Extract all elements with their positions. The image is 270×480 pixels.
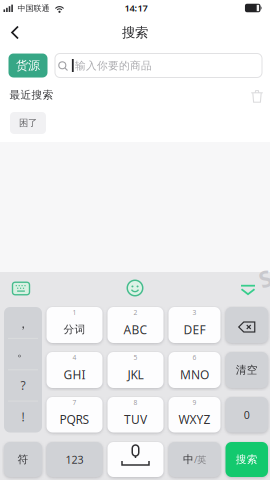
staticText: ， xyxy=(16,315,29,332)
button[interactable]: 5 xyxy=(107,352,163,388)
button[interactable]: ， xyxy=(4,308,42,339)
staticText: 输入你要的商品 xyxy=(75,59,152,72)
staticText: 2 xyxy=(133,308,137,317)
button[interactable]: Search field xyxy=(55,53,262,77)
staticText: WXYZ xyxy=(178,411,210,427)
button[interactable]: Clear recent searches xyxy=(249,88,265,104)
staticText: MNO xyxy=(180,366,209,382)
button[interactable]: Keyboard settings xyxy=(12,282,29,295)
button[interactable]: 符 xyxy=(4,442,42,477)
button[interactable]: Back xyxy=(0,17,30,47)
staticText: TUV xyxy=(124,411,147,427)
button[interactable]: 货源 xyxy=(8,53,47,77)
staticText: 。 xyxy=(17,345,29,359)
button[interactable]: 8 xyxy=(107,397,163,432)
button[interactable]: Delete xyxy=(225,307,268,343)
staticText: JKL xyxy=(127,366,143,382)
staticText: 困了 xyxy=(19,117,37,129)
staticText: 搜索 xyxy=(236,453,258,466)
staticText: 0 xyxy=(244,408,250,422)
staticText: /英 xyxy=(194,453,206,466)
button[interactable]: Emoji xyxy=(127,280,143,296)
staticText: 清空 xyxy=(236,363,258,376)
button[interactable]: 。 xyxy=(4,337,42,368)
button[interactable]: 2 xyxy=(107,307,163,343)
staticText: 分词 xyxy=(63,323,85,336)
staticText: 1 xyxy=(72,308,76,317)
staticText: 14:17 xyxy=(124,2,147,14)
staticText: 3 xyxy=(192,308,196,317)
button[interactable]: 123 xyxy=(46,442,102,477)
staticText: ! xyxy=(21,409,24,425)
staticText: 5 xyxy=(133,353,137,362)
staticText: 8 xyxy=(133,398,137,407)
staticText: 123 xyxy=(65,452,83,467)
staticText: 9 xyxy=(192,398,196,407)
staticText: 4 xyxy=(72,353,76,362)
staticText: ABC xyxy=(123,321,147,337)
staticText: GHI xyxy=(63,366,85,382)
button[interactable]: 1 xyxy=(46,307,102,343)
staticText: 货源 xyxy=(16,58,40,73)
button[interactable]: 0 xyxy=(225,397,268,432)
staticText: 6 xyxy=(192,353,196,362)
button[interactable]: 7 xyxy=(46,397,102,432)
staticText: 最近搜索 xyxy=(9,88,53,101)
staticText: 中 xyxy=(183,453,194,466)
button[interactable]: 9 xyxy=(168,397,220,432)
staticText: 符 xyxy=(17,453,28,466)
button[interactable]: ! xyxy=(4,401,42,432)
staticText: 7 xyxy=(72,398,76,407)
button[interactable]: 4 xyxy=(46,352,102,388)
staticText: ? xyxy=(20,377,25,393)
staticText: DEF xyxy=(183,321,205,337)
button[interactable]: ? xyxy=(4,370,42,401)
button[interactable]: Hide keyboard xyxy=(240,285,256,296)
button[interactable]: 6 xyxy=(168,352,220,388)
staticText: PQRS xyxy=(59,411,89,427)
button[interactable]: 困了 xyxy=(10,112,46,134)
staticText: 搜索 xyxy=(122,24,148,41)
button[interactable]: 清空 xyxy=(225,352,268,388)
button[interactable]: 搜索 xyxy=(225,442,268,477)
staticText: 中国联通 xyxy=(17,3,49,13)
staticText: S xyxy=(259,263,270,293)
button[interactable]: Voice input xyxy=(107,442,163,477)
button[interactable]: 中 xyxy=(168,442,220,477)
button[interactable]: 3 xyxy=(168,307,220,343)
